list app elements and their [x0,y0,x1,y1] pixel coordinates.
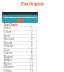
staticText: Nostra [4,41,13,45]
button[interactable]: Minim [3,62,37,66]
staticText: Quis [4,48,10,52]
button[interactable]: Dolor [3,26,37,30]
staticText: Dolor [4,26,11,30]
button[interactable]: Nostrud [3,37,37,41]
staticText: Cillum [4,69,12,72]
staticText: Veniam [4,44,14,48]
staticText: 10 [30,58,33,62]
staticText: 4 [31,37,33,41]
staticText: 8 [31,51,33,55]
button[interactable]: Magna [3,55,37,59]
button[interactable]: Nulla vitae elit libero pharetra augue [2,12,38,23]
staticText: Nulla vitae elit libero pharetra augue [4,16,37,19]
staticText: 6 [31,44,33,48]
button[interactable] [17,19,24,22]
staticText: Nostrud [4,37,14,41]
staticText: 11 [30,62,33,66]
staticText: 1 [31,26,33,30]
button[interactable]: Chore [3,30,37,34]
staticText: Aliqua [4,58,12,62]
staticText: 2 [31,30,33,34]
staticText: Minim [4,62,12,66]
button[interactable]: Cillum [3,69,37,72]
staticText: 7 [31,48,33,52]
staticText: Chore [4,30,12,34]
button[interactable]: Labore [3,51,37,55]
button[interactable]: Quis [3,48,37,52]
staticText: 5 [31,41,33,45]
staticText: Enim [4,34,11,38]
button[interactable]: Veniam [3,44,37,48]
staticText: Magna [4,55,13,59]
staticText: 13 [30,69,33,72]
button[interactable]: Enim [3,34,37,38]
staticText: Pita Original [21,1,44,6]
staticText: Top Charts [4,23,18,27]
staticText: 3 [31,34,33,38]
button[interactable]: Ullamco [3,65,37,69]
staticText: Labore [4,51,13,55]
staticText: 12 [30,65,33,69]
staticText: Lorem ipsum dolor sit amet [19,4,45,7]
staticText: 9 [31,55,33,59]
button[interactable]: Nostra [3,41,37,45]
staticText: Ullamco [4,65,14,69]
button[interactable]: Aliqua [3,58,37,62]
